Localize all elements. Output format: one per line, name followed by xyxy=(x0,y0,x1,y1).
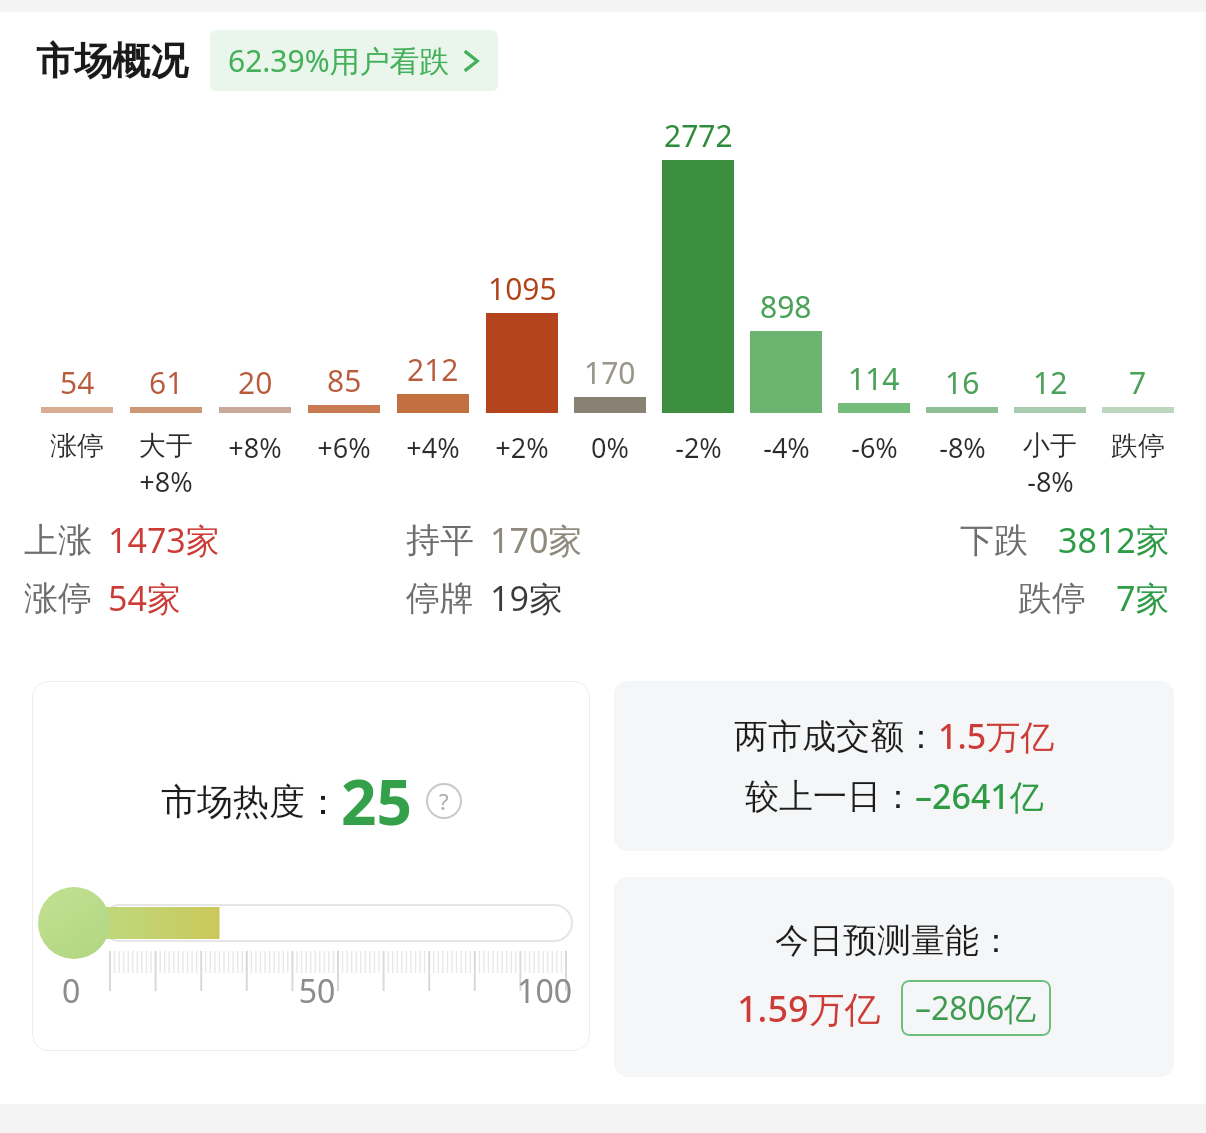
staticText: 100 xyxy=(402,969,572,1005)
staticText: 1.5万亿 xyxy=(938,713,1055,759)
staticText: 跌停 xyxy=(1111,429,1165,463)
staticText: +4% xyxy=(406,429,460,466)
staticText: 市场概况 xyxy=(36,37,188,85)
staticText: 较上一日： xyxy=(745,775,915,818)
staticText: 上涨 xyxy=(24,519,92,562)
staticText: 2772 xyxy=(664,115,733,156)
staticText: 85 xyxy=(327,360,362,401)
staticText: 19家 xyxy=(490,575,563,621)
staticText: 7 xyxy=(1129,362,1147,403)
staticText: -6% xyxy=(851,429,898,466)
staticText: 小于 xyxy=(1023,429,1077,463)
staticText: +8% xyxy=(228,429,282,466)
staticText: 市场热度： xyxy=(161,779,341,824)
staticText: 1473家 xyxy=(108,517,220,563)
staticText: 54家 xyxy=(108,575,181,621)
staticText: 898 xyxy=(760,286,812,327)
staticText: 大于 xyxy=(139,429,193,463)
staticText: 3812家 xyxy=(1058,517,1170,563)
staticText: 跌停 xyxy=(1018,577,1086,620)
staticText: 0 xyxy=(62,969,232,1005)
staticText: 停牌 xyxy=(406,577,474,620)
staticText: 今日预测量能： xyxy=(775,919,1013,962)
staticText: 0% xyxy=(591,429,629,466)
staticText: 涨停 xyxy=(50,429,104,463)
staticText: 61 xyxy=(149,362,184,403)
staticText: 114 xyxy=(848,358,900,399)
button[interactable]: 两市成交额： xyxy=(614,681,1174,851)
staticText: 12 xyxy=(1033,362,1068,403)
button[interactable]: 今日预测量能： xyxy=(614,877,1174,1077)
staticText: 50 xyxy=(232,969,402,1005)
staticText: 25 xyxy=(341,759,412,843)
staticText: 下跌 xyxy=(960,519,1028,562)
staticText: 1.59万亿 xyxy=(737,984,881,1033)
staticText: ? xyxy=(439,786,449,816)
staticText: 7家 xyxy=(1116,575,1170,621)
staticText: 212 xyxy=(407,349,459,390)
staticText: -2% xyxy=(675,429,722,466)
staticText: 1095 xyxy=(488,268,557,309)
staticText: 持平 xyxy=(406,519,474,562)
staticText: 涨停 xyxy=(24,577,92,620)
button[interactable]: 62.39%用户看跌 xyxy=(210,30,498,91)
button[interactable]: 帮助说明 xyxy=(426,783,462,819)
staticText: 170家 xyxy=(490,517,583,563)
staticText: -8% xyxy=(1027,463,1074,500)
staticText: 两市成交额： xyxy=(734,715,938,758)
staticText: 20 xyxy=(238,362,273,403)
staticText: -8% xyxy=(939,429,986,466)
staticText: +6% xyxy=(317,429,371,466)
staticText: 16 xyxy=(945,362,980,403)
staticText: +8% xyxy=(139,463,193,500)
button[interactable]: 市场热度： xyxy=(32,681,590,1051)
staticText: -4% xyxy=(763,429,810,466)
staticText: 62.39%用户看跌 xyxy=(228,40,450,81)
staticText: +2% xyxy=(495,429,549,466)
staticText: –2641亿 xyxy=(915,773,1044,819)
staticText: –2806亿 xyxy=(915,986,1037,1030)
staticText: 54 xyxy=(60,362,95,403)
staticText: 170 xyxy=(584,352,636,393)
